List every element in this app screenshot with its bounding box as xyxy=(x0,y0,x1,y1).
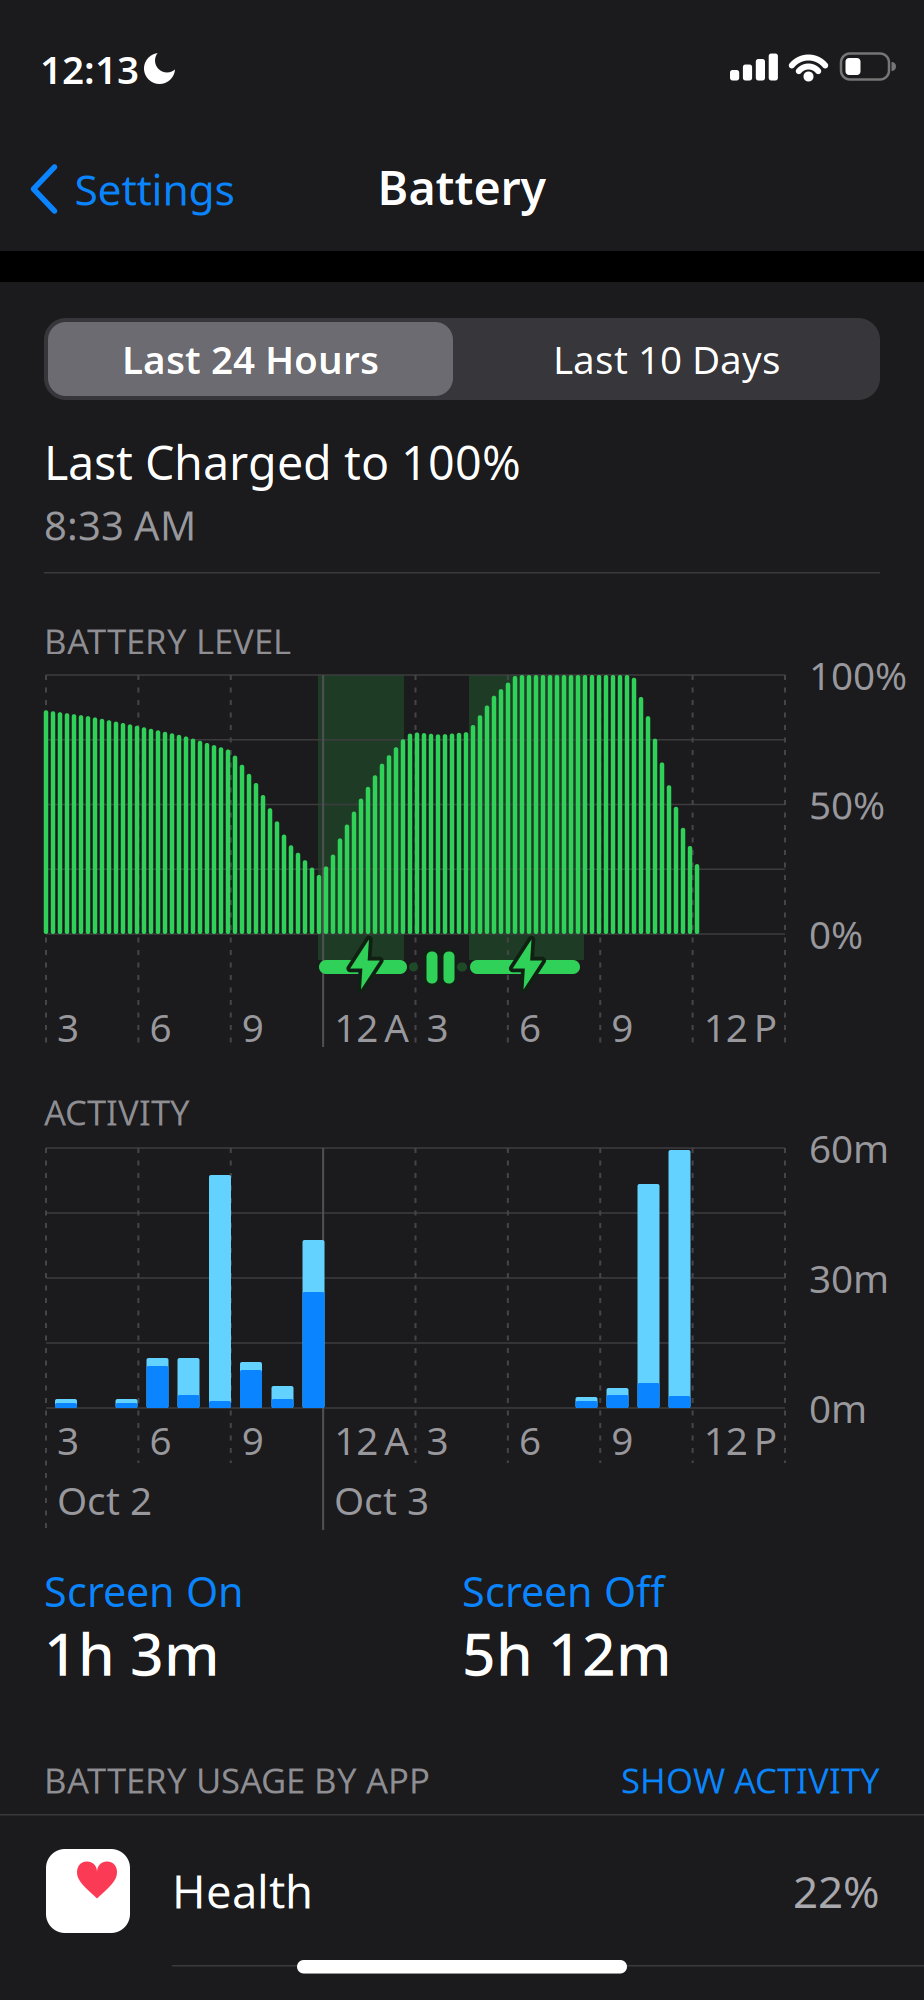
button[interactable]: Settings xyxy=(33,161,234,217)
staticText: Screen Off xyxy=(462,1564,664,1618)
staticText: 6 xyxy=(519,1001,541,1053)
staticText: 22% xyxy=(793,1862,880,1920)
staticText: 9 xyxy=(242,1001,264,1053)
staticText: 12 P xyxy=(704,1414,777,1466)
staticText: 100% xyxy=(809,649,907,701)
staticText: Last Charged to 100% xyxy=(44,431,521,493)
button[interactable]: SHOW ACTIVITY xyxy=(520,1757,880,1803)
staticText: 12 A xyxy=(334,1414,409,1466)
staticText: SHOW ACTIVITY xyxy=(621,1757,880,1803)
button[interactable]: Last 10 Days xyxy=(477,322,857,396)
staticText: ACTIVITY xyxy=(44,1089,190,1135)
staticText: 6 xyxy=(149,1414,171,1466)
button[interactable]: Health xyxy=(46,1816,924,1966)
staticText: Last 10 Days xyxy=(553,333,781,385)
staticText: BATTERY LEVEL xyxy=(44,618,291,664)
button[interactable]: Last 24 Hours xyxy=(48,322,453,396)
staticText: 3 xyxy=(426,1414,448,1466)
staticText: 12 A xyxy=(334,1001,409,1053)
staticText: 9 xyxy=(611,1001,633,1053)
staticText: 30m xyxy=(809,1252,889,1304)
staticText: Screen On xyxy=(44,1564,244,1618)
staticText: 3 xyxy=(57,1414,79,1466)
staticText: 6 xyxy=(149,1001,171,1053)
staticText: 6 xyxy=(519,1414,541,1466)
staticText: Oct 2 xyxy=(57,1474,152,1526)
staticText: Health xyxy=(172,1861,313,1921)
staticText: 60m xyxy=(809,1122,889,1174)
staticText: 0m xyxy=(809,1382,867,1434)
staticText: 5h 12m xyxy=(462,1614,672,1692)
staticText: 3 xyxy=(57,1001,79,1053)
staticText: 3 xyxy=(426,1001,448,1053)
staticText: 12:13 xyxy=(40,43,139,95)
staticText: Oct 3 xyxy=(334,1474,429,1526)
staticText: 9 xyxy=(242,1414,264,1466)
staticText: 0% xyxy=(809,908,863,960)
staticText: Settings xyxy=(74,161,234,217)
staticText: Battery xyxy=(377,156,546,218)
staticText: 1h 3m xyxy=(44,1614,220,1692)
staticText: 9 xyxy=(611,1414,633,1466)
staticText: 50% xyxy=(809,779,885,830)
staticText: 12 P xyxy=(704,1001,777,1053)
staticText: BATTERY USAGE BY APP xyxy=(44,1757,430,1803)
staticText: 8:33 AM xyxy=(44,498,196,551)
staticText: Last 24 Hours xyxy=(122,333,379,385)
